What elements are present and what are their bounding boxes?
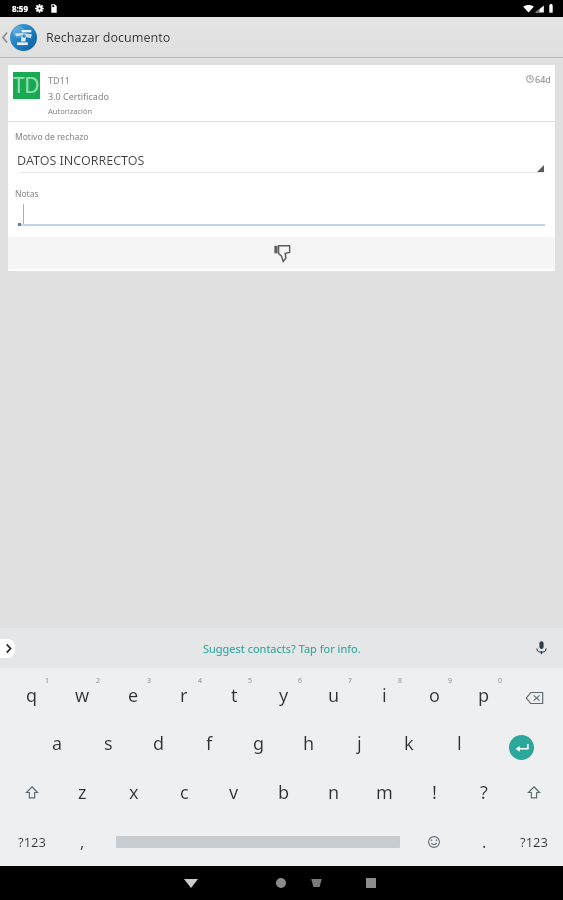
staticText: p <box>478 683 490 708</box>
button[interactable]: o <box>409 671 459 719</box>
staticText: s <box>104 731 113 756</box>
button[interactable]: Shift <box>509 768 559 817</box>
button[interactable]: Voice input <box>530 637 552 659</box>
staticText: g <box>253 731 265 756</box>
button[interactable]: Switch keyboard <box>296 866 336 900</box>
button[interactable]: n <box>309 768 359 817</box>
button[interactable]: . <box>459 817 509 866</box>
button[interactable]: Expand suggestions <box>0 639 15 658</box>
button[interactable]: k <box>384 719 434 768</box>
staticText: 7 <box>348 676 353 686</box>
button[interactable]: ! <box>409 768 459 817</box>
staticText: d <box>153 731 165 756</box>
button[interactable]: Backspace <box>509 671 559 719</box>
button[interactable]: Emoji <box>409 817 459 866</box>
button[interactable]: c <box>159 768 209 817</box>
button[interactable]: x <box>108 768 159 817</box>
button[interactable]: Shift <box>6 768 57 817</box>
button[interactable]: Space <box>107 817 409 866</box>
staticText: ! <box>432 780 437 805</box>
staticText: ?123 <box>18 833 46 851</box>
button[interactable]: Enter <box>484 719 559 768</box>
button[interactable]: r <box>159 671 209 719</box>
staticText: j <box>357 731 362 756</box>
button[interactable]: g <box>234 719 284 768</box>
staticText: DATOS INCORRECTOS <box>17 152 145 169</box>
staticText: , <box>80 831 85 853</box>
staticText: 1 <box>45 676 50 686</box>
staticText: 5 <box>248 676 253 686</box>
staticText: r <box>180 683 188 708</box>
button[interactable]: Close keyboard <box>167 866 215 900</box>
button[interactable]: a <box>32 719 83 768</box>
staticText: c <box>180 780 189 805</box>
staticText: i <box>382 683 387 708</box>
staticText: b <box>278 780 290 805</box>
staticText: f <box>206 731 213 756</box>
button[interactable]: Recents <box>347 866 395 900</box>
staticText: w <box>75 683 90 708</box>
staticText: 4 <box>198 676 203 686</box>
staticText: 2 <box>96 676 101 686</box>
button[interactable]: e <box>108 671 159 719</box>
staticText: k <box>404 731 414 756</box>
button[interactable]: u <box>309 671 359 719</box>
staticText: x <box>129 780 139 805</box>
staticText: TD11 <box>48 74 70 86</box>
staticText: m <box>376 780 393 805</box>
staticText: z <box>78 780 87 805</box>
button[interactable]: j <box>334 719 384 768</box>
button[interactable]: ?123 <box>509 817 559 866</box>
button[interactable]: v <box>209 768 259 817</box>
button[interactable]: f <box>184 719 234 768</box>
button[interactable]: , <box>57 817 107 866</box>
button[interactable]: Home <box>257 866 305 900</box>
staticText: 0 <box>498 676 503 686</box>
button[interactable]: ?123 <box>6 817 57 866</box>
staticText: ?123 <box>520 833 548 851</box>
button[interactable]: t <box>209 671 259 719</box>
staticText: 64d <box>535 73 551 85</box>
staticText: y <box>279 683 289 708</box>
staticText: Notas <box>15 188 39 200</box>
staticText: a <box>52 731 63 756</box>
staticText: TD <box>13 71 40 98</box>
staticText: 3 <box>147 676 152 686</box>
button[interactable]: q <box>6 671 57 719</box>
staticText: 6 <box>298 676 303 686</box>
staticText: v <box>229 780 239 805</box>
staticText: e <box>128 683 139 708</box>
button[interactable]: w <box>57 671 108 719</box>
staticText: u <box>328 683 340 708</box>
button[interactable]: y <box>259 671 309 719</box>
button[interactable]: z <box>57 768 108 817</box>
staticText: ? <box>480 780 488 805</box>
button[interactable]: d <box>134 719 184 768</box>
staticText: t <box>231 683 238 708</box>
staticText: q <box>26 683 38 708</box>
button[interactable]: Reject <box>266 237 298 269</box>
button[interactable]: Back <box>0 17 37 58</box>
button[interactable]: i <box>359 671 409 719</box>
staticText: Rechazar documento <box>46 29 171 46</box>
button[interactable]: b <box>259 768 309 817</box>
button[interactable]: ? <box>459 768 509 817</box>
button[interactable]: Suggest contacts? Tap for info. <box>203 641 361 656</box>
button[interactable]: s <box>83 719 134 768</box>
button[interactable]: l <box>434 719 484 768</box>
staticText: 8 <box>398 676 403 686</box>
staticText: 8:59 <box>12 3 28 14</box>
staticText: l <box>457 731 462 756</box>
staticText: Autorización <box>48 106 93 116</box>
staticText: 3.0 Certificado <box>48 90 109 102</box>
button[interactable]: m <box>359 768 409 817</box>
staticText: Motivo de rechazo <box>15 131 89 143</box>
button[interactable]: p <box>459 671 509 719</box>
staticText: o <box>429 683 440 708</box>
staticText: n <box>328 780 340 805</box>
staticText: . <box>482 831 487 853</box>
button[interactable]: h <box>284 719 334 768</box>
staticText: 9 <box>448 676 453 686</box>
staticText: h <box>303 731 315 756</box>
